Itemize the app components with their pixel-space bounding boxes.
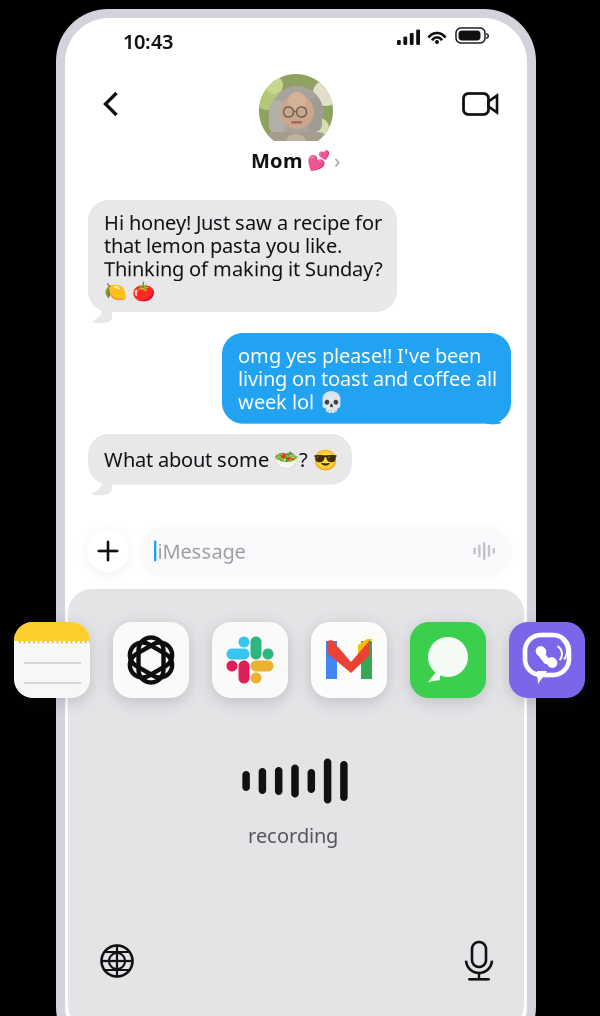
- staticText: Mom: [251, 147, 303, 174]
- staticText: ›: [334, 147, 341, 174]
- staticText: that lemon pasta you like.: [104, 232, 342, 259]
- staticText: week lol 💀: [238, 388, 344, 415]
- staticText: omg yes please!! I've been: [238, 342, 481, 369]
- staticText: iMessage: [157, 538, 245, 564]
- staticText: What about some 🥗? 😎: [104, 446, 338, 473]
- staticText: 10:43: [123, 28, 173, 55]
- button[interactable]: Mom: [237, 141, 355, 180]
- staticText: 🍋 🍅: [104, 278, 155, 303]
- staticText: Hi honey! Just saw a recipe for: [104, 209, 382, 236]
- button[interactable]: Add attachment: [87, 530, 129, 572]
- staticText: living on toast and coffee all: [238, 365, 497, 392]
- staticText: recording: [248, 822, 338, 849]
- button[interactable]: Dictate: [455, 938, 503, 986]
- staticText: 💕: [307, 150, 330, 171]
- button[interactable]: Change keyboard: [93, 937, 141, 985]
- button[interactable]: Video call: [452, 75, 510, 133]
- staticText: Thinking of making it Sunday?: [104, 255, 383, 282]
- button[interactable]: Back: [82, 75, 140, 133]
